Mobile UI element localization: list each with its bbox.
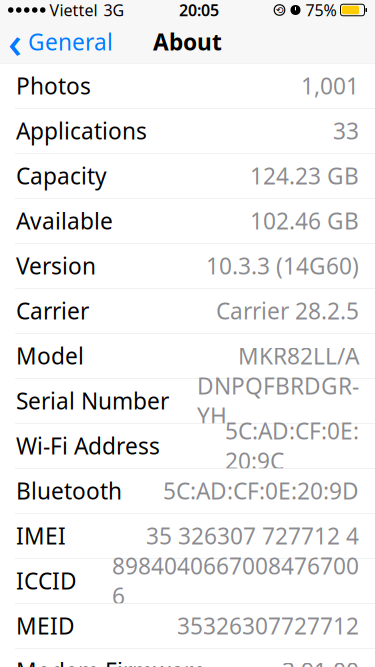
- button[interactable]: IMEI: [0, 513, 375, 558]
- staticText: 20:05: [179, 0, 219, 21]
- staticText: MKR82LL/A: [238, 341, 359, 371]
- staticText: 5C:AD:CF:0E:20:9D: [163, 476, 359, 506]
- button[interactable]: Wi-Fi Address: [0, 423, 375, 468]
- staticText: 1,001: [301, 71, 359, 101]
- button[interactable]: Serial Number: [0, 378, 375, 423]
- staticText: 124.23 GB: [250, 161, 359, 191]
- staticText: General: [28, 27, 113, 57]
- staticText: MEID: [16, 611, 75, 641]
- staticText: 35326307727712: [177, 611, 359, 641]
- staticText: ‹: [8, 13, 22, 70]
- button[interactable]: ‹: [0, 7, 113, 76]
- staticText: 75%: [305, 0, 336, 21]
- staticText: Capacity: [16, 161, 107, 191]
- button[interactable]: Modem Firmware: [0, 648, 375, 667]
- button[interactable]: Photos: [0, 63, 375, 108]
- staticText: Available: [16, 206, 113, 236]
- staticText: 3.91.00: [282, 656, 359, 667]
- staticText: Serial Number: [16, 386, 169, 416]
- staticText: 35 326307 727712 4: [146, 521, 359, 551]
- staticText: Bluetooth: [16, 476, 122, 506]
- staticText: 89840406670084767006: [112, 551, 359, 611]
- staticText: Model: [16, 341, 84, 371]
- button[interactable]: Model: [0, 333, 375, 378]
- button[interactable]: MEID: [0, 603, 375, 648]
- button[interactable]: Available: [0, 198, 375, 243]
- staticText: IMEI: [16, 521, 66, 551]
- staticText: Carrier: [16, 296, 89, 326]
- staticText: Photos: [16, 71, 91, 101]
- staticText: Wi-Fi Address: [16, 431, 160, 461]
- button[interactable]: Bluetooth: [0, 468, 375, 513]
- button[interactable]: Applications: [0, 108, 375, 153]
- staticText: ICCID: [16, 566, 77, 596]
- staticText: Applications: [16, 116, 147, 146]
- button[interactable]: Carrier: [0, 288, 375, 333]
- staticText: 10.3.3 (14G60): [206, 251, 359, 281]
- staticText: Version: [16, 251, 96, 281]
- button[interactable]: ICCID: [0, 558, 375, 603]
- staticText: Viettel: [49, 0, 97, 21]
- staticText: 3G: [103, 0, 124, 21]
- staticText: ⟲: [275, 5, 283, 15]
- staticText: 5C:AD:CF:0E:20:9C: [225, 416, 359, 476]
- staticText: Modem Firmware: [16, 656, 206, 667]
- button[interactable]: Capacity: [0, 153, 375, 198]
- button[interactable]: Version: [0, 243, 375, 288]
- staticText: About: [153, 27, 222, 57]
- staticText: 33: [333, 116, 359, 146]
- staticText: Carrier 28.2.5: [216, 296, 359, 326]
- staticText: DNPQFBRDGRYH: [197, 371, 359, 431]
- staticText: 102.46 GB: [250, 206, 359, 236]
